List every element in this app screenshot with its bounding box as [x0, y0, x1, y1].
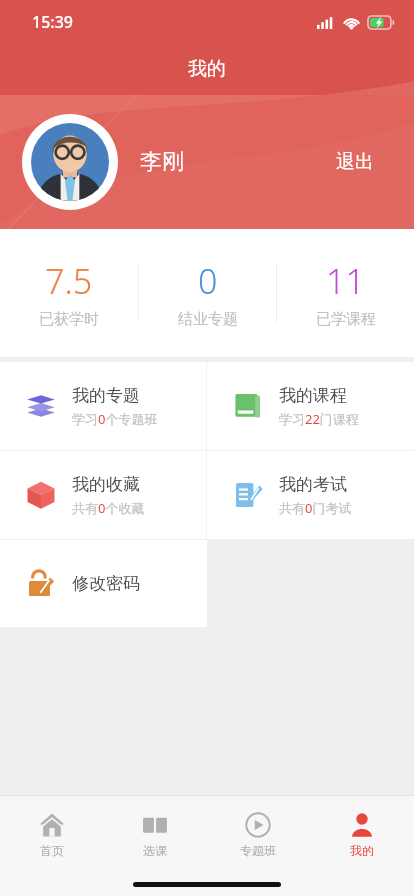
other: 专题班: [245, 812, 271, 838]
staticText: 我的课程: [279, 385, 347, 406]
staticText: 11: [326, 258, 365, 304]
staticText: 退出: [336, 150, 374, 174]
button[interactable]: 11: [277, 229, 414, 357]
staticText: 结业专题: [178, 310, 238, 329]
button[interactable]: 退出: [318, 140, 392, 184]
staticText: 我的考试: [279, 474, 347, 495]
staticText: 我的收藏: [72, 474, 140, 495]
staticText: 共有0门考试: [279, 499, 352, 517]
staticText: 0: [198, 258, 218, 304]
button[interactable]: 我的考试: [207, 451, 414, 539]
button[interactable]: 我的: [310, 808, 414, 862]
other: 我的: [349, 812, 375, 838]
staticText: 已获学时: [39, 310, 99, 329]
staticText: 7.5: [45, 258, 93, 304]
staticText: 选课: [143, 843, 167, 858]
other: 首页: [39, 812, 65, 838]
staticText: 已学课程: [316, 310, 376, 329]
staticText: 修改密码: [72, 573, 140, 594]
button[interactable]: 7.5: [0, 229, 138, 357]
staticText: 李刚: [140, 148, 184, 176]
staticText: 专题班: [240, 843, 276, 858]
other: 选课: [142, 812, 168, 838]
staticText: 学习22门课程: [279, 410, 359, 428]
staticText: 学习0个专题班: [72, 410, 158, 428]
button[interactable]: 我的课程: [207, 362, 414, 450]
button[interactable]: 我的专题: [0, 362, 206, 450]
staticText: 首页: [40, 843, 64, 858]
button[interactable]: 专题班: [206, 808, 310, 862]
button[interactable]: 修改密码: [0, 540, 207, 627]
button[interactable]: 我的收藏: [0, 451, 206, 539]
staticText: 我的专题: [72, 385, 140, 406]
button[interactable]: 选课: [103, 808, 206, 862]
button[interactable]: 首页: [0, 808, 103, 862]
staticText: 我的: [350, 843, 374, 858]
staticText: 共有0个收藏: [72, 499, 145, 517]
button[interactable]: 0: [139, 229, 276, 357]
staticText: 15:39: [32, 11, 73, 33]
staticText: 我的: [188, 57, 226, 81]
